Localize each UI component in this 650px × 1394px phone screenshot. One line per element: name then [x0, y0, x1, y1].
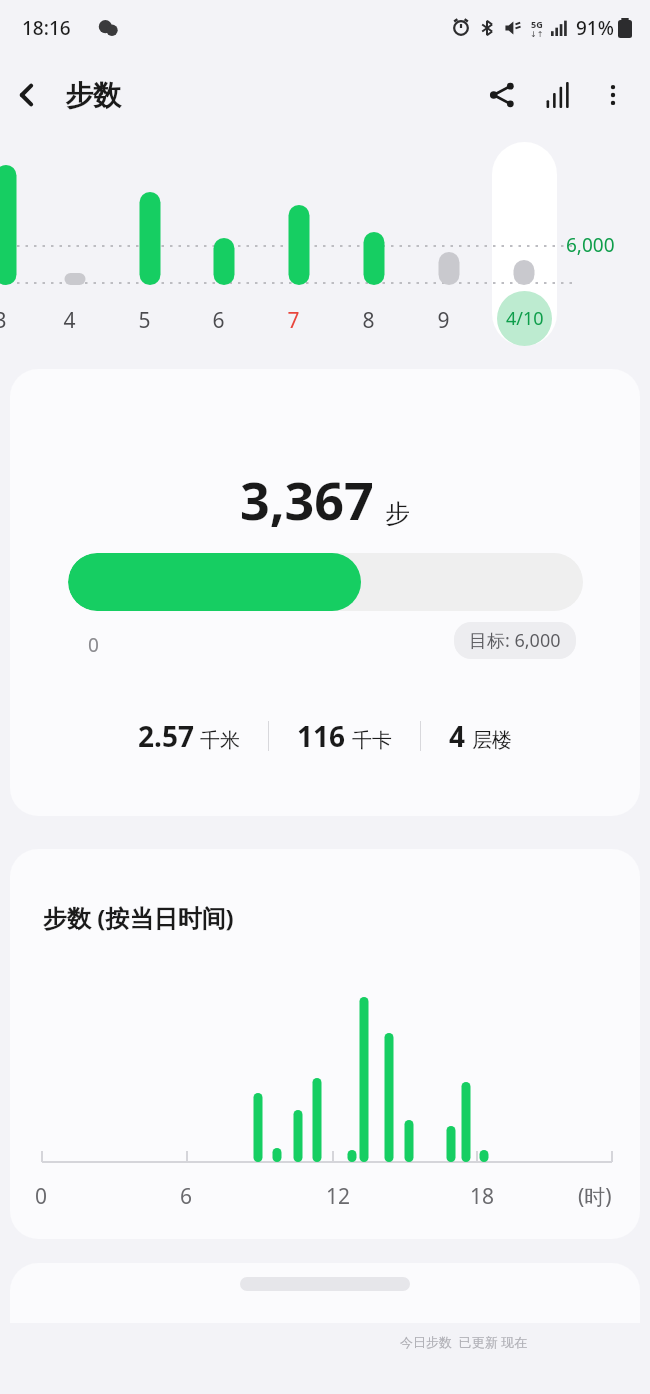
staticText: 目标: 6,000: [469, 628, 561, 653]
staticText: ↓↑: [530, 30, 544, 39]
staticText: 91%: [576, 15, 614, 41]
staticText: 步数 (按当日时间): [43, 901, 234, 934]
staticText: 12: [326, 1182, 351, 1211]
staticText: 18: [470, 1182, 495, 1211]
staticText: 2.57: [138, 717, 194, 755]
staticText: 4: [449, 717, 466, 755]
staticText: 0: [88, 632, 99, 658]
button[interactable]: Chart: [530, 67, 586, 123]
staticText: 7: [287, 306, 300, 335]
staticText: 0: [35, 1182, 48, 1211]
staticText: 步: [385, 498, 410, 529]
button[interactable]: 步数 (按当日时间): [10, 849, 640, 1239]
staticText: 层楼: [472, 728, 512, 753]
staticText: 116: [297, 717, 346, 755]
staticText: 6: [212, 306, 225, 335]
staticText: 今日步数 已更新 现在: [400, 1333, 528, 1351]
button[interactable]: [492, 142, 557, 346]
staticText: 3: [0, 306, 7, 335]
staticText: 6,000: [566, 232, 615, 258]
staticText: 步数: [65, 78, 121, 113]
staticText: (时): [578, 1182, 612, 1211]
staticText: 千卡: [352, 728, 392, 753]
button[interactable]: [10, 1263, 640, 1323]
staticText: 6: [180, 1182, 193, 1211]
staticText: 5G: [531, 18, 543, 30]
staticText: 3,367: [240, 464, 374, 535]
button[interactable]: Share: [474, 67, 530, 123]
button[interactable]: 3,367: [10, 369, 640, 816]
staticText: 4/10: [506, 306, 544, 331]
staticText: 4: [63, 306, 76, 335]
staticText: 5: [138, 306, 151, 335]
button[interactable]: More options: [586, 68, 640, 122]
staticText: 9: [437, 306, 450, 335]
staticText: 千米: [200, 728, 240, 753]
button[interactable]: Back: [0, 68, 54, 122]
staticText: 8: [362, 306, 375, 335]
staticText: 18:16: [22, 15, 71, 41]
